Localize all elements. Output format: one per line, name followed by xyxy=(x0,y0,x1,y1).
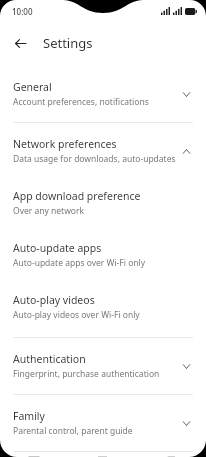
button[interactable]: Auto-update apps xyxy=(0,233,206,277)
staticText: Auto-play videos over Wi-Fi only xyxy=(13,309,140,321)
staticText: Fingerprint, purchase authentication xyxy=(13,368,160,380)
button[interactable]: App download preference xyxy=(0,181,206,225)
button[interactable]: General xyxy=(0,72,206,116)
staticText: General xyxy=(13,80,52,94)
button[interactable]: Network preferences xyxy=(0,129,206,173)
staticText: Auto-update apps over Wi-Fi only xyxy=(13,257,146,269)
button[interactable]: Back xyxy=(8,31,32,55)
staticText: Auto-play videos xyxy=(13,293,95,307)
staticText: Account preferences, notifications xyxy=(13,96,149,108)
staticText: Settings xyxy=(43,34,93,52)
staticText: Network preferences xyxy=(13,137,117,151)
staticText: Over any network xyxy=(13,205,85,217)
staticText: Parental control, parent guide xyxy=(13,425,133,437)
staticText: 10:00 xyxy=(12,6,33,17)
button[interactable]: Auto-play videos xyxy=(0,285,206,329)
button[interactable]: Authentication xyxy=(0,344,206,388)
staticText: Family xyxy=(13,409,45,423)
button[interactable]: Family xyxy=(0,401,206,445)
staticText: App download preference xyxy=(13,189,141,203)
staticText: Auto-update apps xyxy=(13,241,102,255)
staticText: Data usage for downloads, auto-updates xyxy=(13,153,176,165)
staticText: Authentication xyxy=(13,352,86,366)
